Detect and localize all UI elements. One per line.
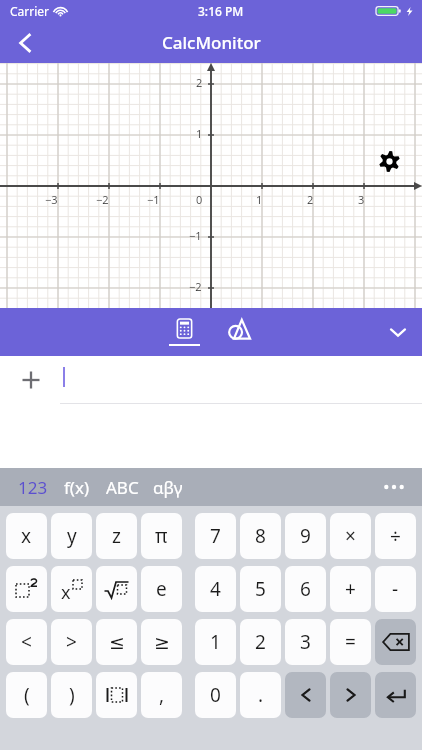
staticText: 6 <box>300 576 311 602</box>
button[interactable]: 2 <box>240 619 281 665</box>
button[interactable]: 4 <box>195 566 236 612</box>
button[interactable]: Back <box>0 22 50 63</box>
button[interactable]: . <box>240 672 281 718</box>
button[interactable]: Square root <box>96 566 137 612</box>
button[interactable]: 1 <box>195 619 236 665</box>
button[interactable]: x <box>6 513 47 559</box>
staticText: −2 <box>96 192 109 207</box>
button[interactable]: Calculator <box>161 308 207 356</box>
staticText: 4 <box>210 576 221 602</box>
staticText: , <box>159 682 165 708</box>
button[interactable]: 8 <box>240 513 281 559</box>
button[interactable]: Add expression <box>14 363 48 397</box>
staticText: αβγ <box>153 476 183 499</box>
staticText: 0 <box>196 192 203 207</box>
staticText: 2 <box>307 192 314 207</box>
staticText: - <box>392 576 399 602</box>
staticText: 1 <box>210 629 221 655</box>
staticText: ≥ <box>154 631 170 653</box>
button[interactable]: ≥ <box>141 619 182 665</box>
staticText: + <box>345 576 356 602</box>
staticText: 3 <box>300 629 311 655</box>
staticText: x <box>61 580 71 605</box>
staticText: ÷ <box>390 523 401 549</box>
staticText: 9 <box>300 523 311 549</box>
button[interactable]: αβγ <box>153 468 183 506</box>
button[interactable]: Backspace <box>375 619 416 665</box>
staticText: ( <box>24 682 30 708</box>
staticText: = <box>345 629 356 655</box>
button[interactable]: Enter <box>375 672 416 718</box>
staticText: e <box>156 576 167 602</box>
staticText: −3 <box>45 192 58 207</box>
staticText: π <box>155 523 168 549</box>
button[interactable]: 7 <box>195 513 236 559</box>
button[interactable]: More options <box>372 468 416 506</box>
staticText: z <box>112 523 121 549</box>
staticText: −2 <box>189 279 202 294</box>
staticText: 2 <box>255 629 266 655</box>
staticText: ABC <box>106 476 139 499</box>
staticText: 2 <box>196 75 203 90</box>
button[interactable]: π <box>141 513 182 559</box>
button[interactable]: 5 <box>240 566 281 612</box>
button[interactable]: ABC <box>106 468 139 506</box>
staticText: −1 <box>147 192 160 207</box>
button[interactable] <box>60 356 422 404</box>
button[interactable]: 0 <box>195 672 236 718</box>
button[interactable]: Settings <box>374 146 404 176</box>
staticText: x <box>21 523 32 549</box>
button[interactable]: Move cursor left <box>285 672 326 718</box>
button[interactable]: z <box>96 513 137 559</box>
button[interactable]: e <box>141 566 182 612</box>
staticText: 1 <box>196 126 203 141</box>
staticText: y <box>67 523 77 549</box>
button[interactable]: Collapse keyboard panel <box>374 308 422 356</box>
staticText: 3 <box>358 192 365 207</box>
button[interactable]: ) <box>51 672 92 718</box>
button[interactable]: 6 <box>285 566 326 612</box>
button[interactable]: 9 <box>285 513 326 559</box>
staticText: CalcMonitor <box>162 31 261 54</box>
button[interactable]: f(x) <box>64 468 90 506</box>
staticText: × <box>345 523 356 549</box>
button[interactable]: 3 <box>285 619 326 665</box>
staticText: 3:16 PM <box>198 3 244 19</box>
button[interactable]: × <box>330 513 371 559</box>
button[interactable]: + <box>330 566 371 612</box>
staticText: . <box>258 682 264 708</box>
staticText: 0 <box>210 682 221 708</box>
button[interactable]: Exponent <box>51 566 92 612</box>
staticText: −1 <box>189 228 202 243</box>
button[interactable]: Geometry <box>217 308 261 356</box>
staticText: 5 <box>255 576 266 602</box>
button[interactable]: < <box>6 619 47 665</box>
button[interactable]: ≤ <box>96 619 137 665</box>
button[interactable]: ÷ <box>375 513 416 559</box>
staticText: 123 <box>18 476 48 499</box>
button[interactable]: y <box>51 513 92 559</box>
button[interactable]: - <box>375 566 416 612</box>
staticText: ) <box>69 682 75 708</box>
staticText: 7 <box>210 523 221 549</box>
staticText: ≤ <box>109 631 125 653</box>
staticText: > <box>66 629 77 655</box>
button[interactable]: = <box>330 619 371 665</box>
button[interactable]: Square <box>6 566 47 612</box>
staticText: 8 <box>255 523 266 549</box>
staticText: 1 <box>256 192 263 207</box>
button[interactable]: 123 <box>18 468 48 506</box>
button[interactable]: Move cursor right <box>330 672 371 718</box>
button[interactable]: > <box>51 619 92 665</box>
staticText: f(x) <box>64 476 90 499</box>
button[interactable]: , <box>141 672 182 718</box>
button[interactable]: Absolute value <box>96 672 137 718</box>
staticText: < <box>21 629 32 655</box>
button[interactable]: ( <box>6 672 47 718</box>
staticText: Carrier <box>10 3 50 19</box>
